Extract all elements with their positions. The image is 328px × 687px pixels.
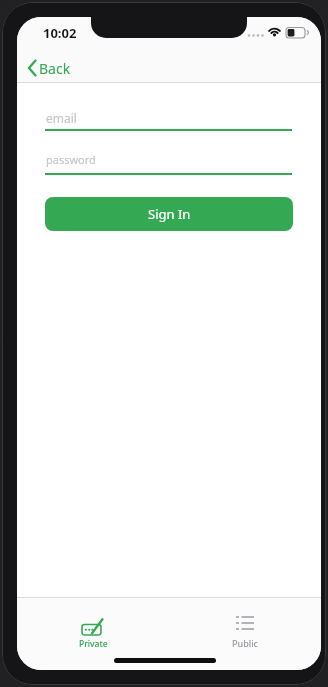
staticText: Back — [39, 59, 71, 78]
staticText: email — [46, 110, 77, 126]
button[interactable]: Public — [169, 614, 321, 649]
staticText: Sign In — [148, 205, 191, 223]
button[interactable]: Sign In — [45, 197, 293, 231]
button[interactable]: Back — [25, 58, 71, 78]
staticText: 10:02 — [43, 24, 77, 42]
button[interactable]: Private — [17, 614, 169, 650]
staticText: Private — [79, 638, 108, 650]
staticText: password — [46, 152, 96, 167]
staticText: Public — [232, 637, 258, 649]
